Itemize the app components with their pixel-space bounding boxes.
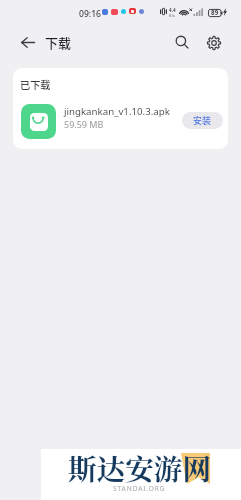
button[interactable]: jingkankan_v1.10.3.apk	[13, 98, 228, 144]
staticText: 已下载	[20, 77, 51, 92]
staticText: 斯达安游网	[68, 447, 211, 488]
staticText: 89	[211, 8, 219, 17]
staticText: K/s	[169, 13, 175, 18]
button[interactable]: 安装	[182, 112, 223, 129]
staticText: 4.4	[169, 7, 176, 13]
staticText: 59.59 MB	[64, 118, 104, 130]
staticText: 09:16	[79, 8, 102, 20]
staticText: 下载	[45, 33, 72, 52]
staticText: STANDAI.ORG	[113, 484, 166, 493]
staticText: jingkankan_v1.10.3.apk	[64, 105, 170, 118]
button[interactable]: Settings	[199, 28, 228, 57]
button[interactable]: Back	[13, 28, 42, 57]
button[interactable]: Search	[168, 28, 197, 57]
staticText: 安装	[193, 114, 212, 127]
